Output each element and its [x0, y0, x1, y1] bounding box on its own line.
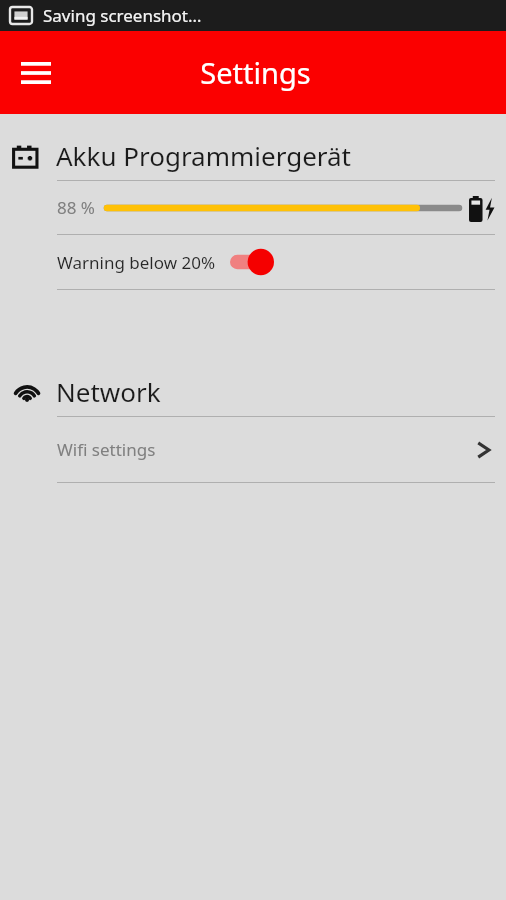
button[interactable]: Open navigation menu — [8, 45, 64, 101]
staticText: Warning below 20% — [57, 251, 216, 274]
other: Network — [12, 378, 44, 406]
button[interactable]: Warning below 20% — [0, 235, 506, 289]
staticText: Saving screenshot… — [43, 4, 202, 27]
button[interactable]: Wifi settings — [0, 417, 506, 482]
staticText: Network — [56, 374, 161, 409]
other: Warning below 20 percent toggle — [230, 247, 276, 277]
staticText: 88 % — [57, 196, 95, 219]
staticText: Akku Programmiergerät — [56, 138, 351, 173]
other: Screenshot — [10, 7, 32, 24]
staticText: Wifi settings — [57, 438, 156, 461]
other: Battery — [12, 142, 44, 170]
other: Charging — [469, 193, 495, 223]
staticText: Settings — [200, 53, 311, 92]
